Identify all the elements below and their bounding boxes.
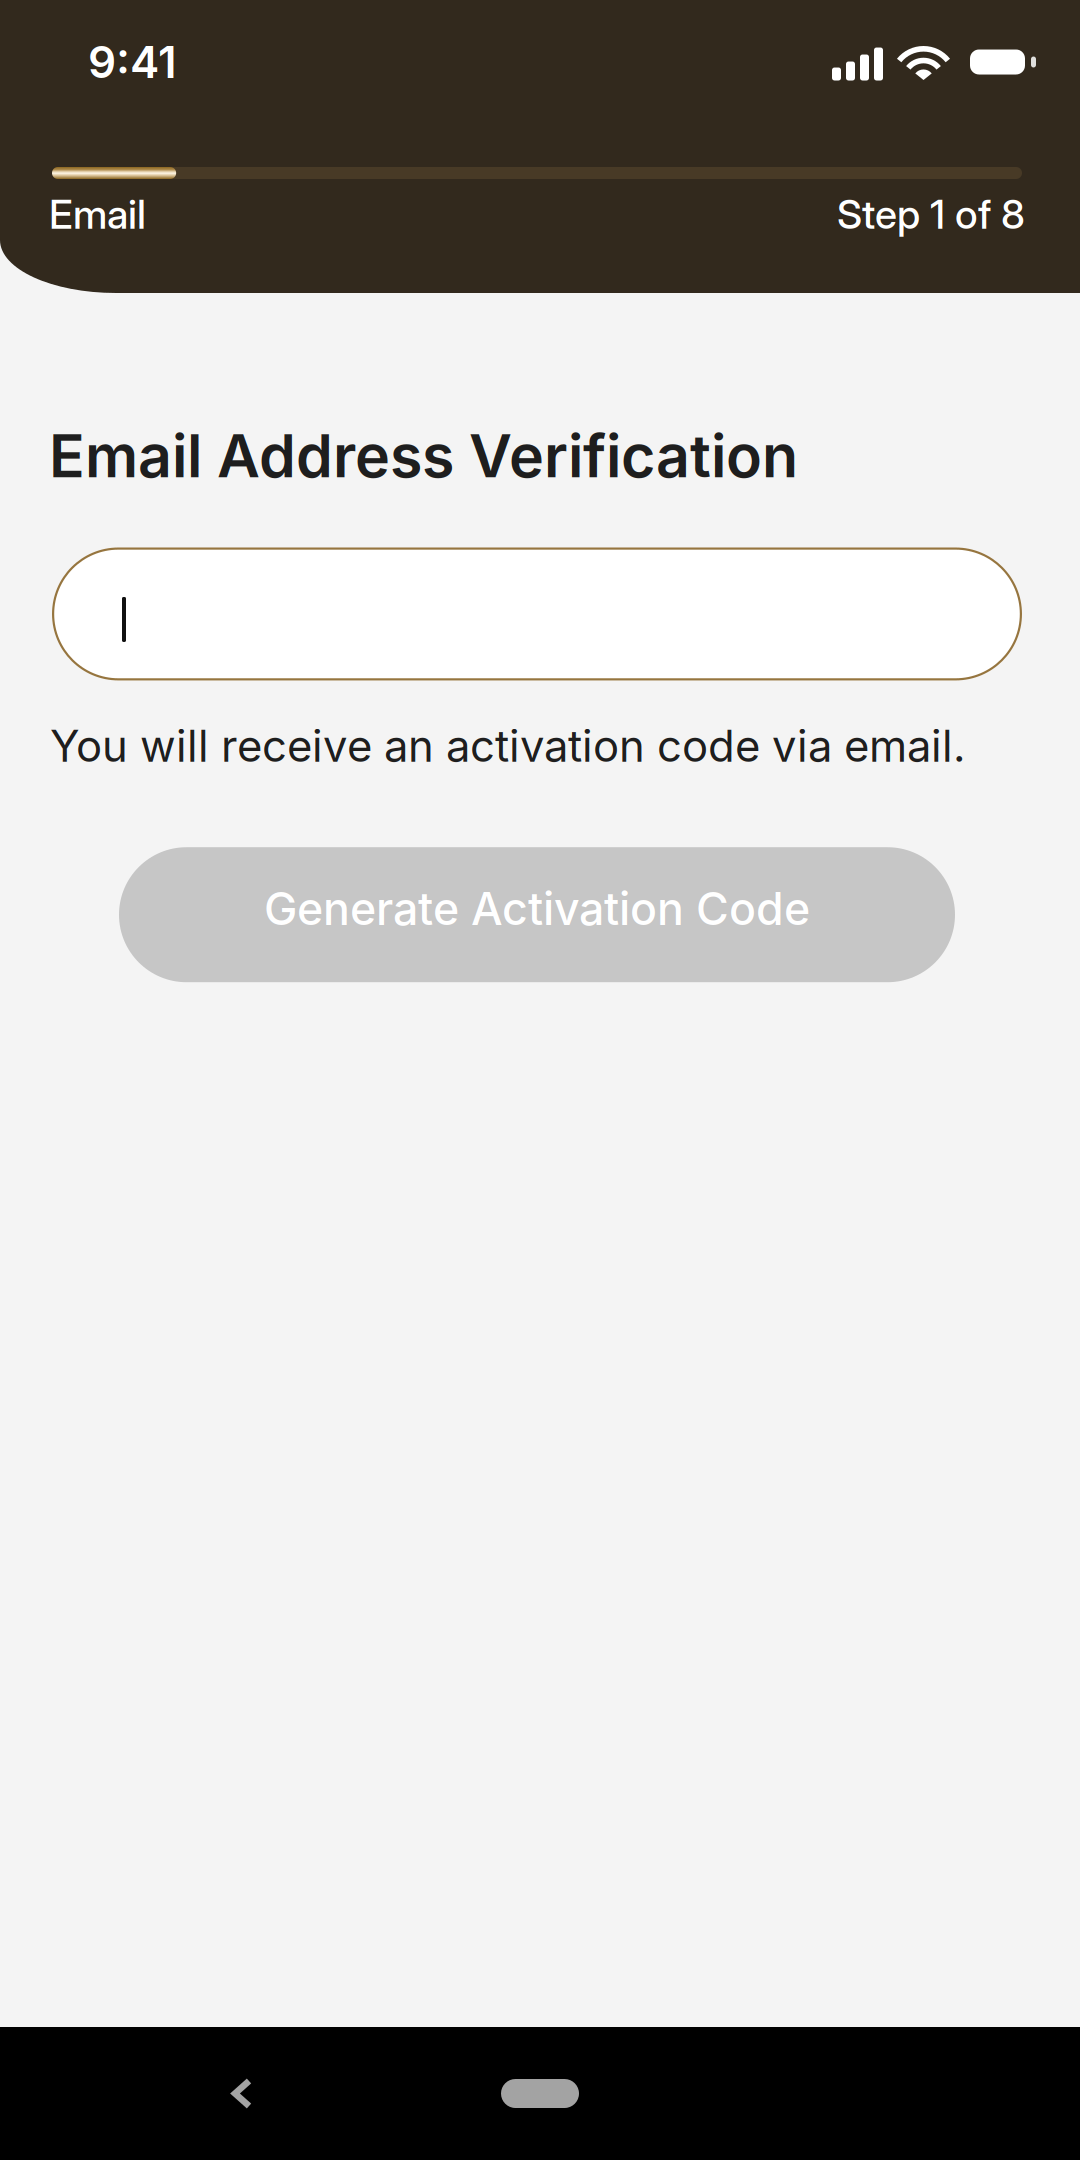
button[interactable]: Generate Activation Code — [119, 847, 955, 982]
staticText: Generate Activation Code — [264, 882, 810, 936]
staticText: Email Address Verification — [49, 420, 798, 491]
staticText: 9:41 — [88, 35, 177, 89]
staticText: Email — [49, 190, 146, 238]
button[interactable]: Back — [195, 2041, 289, 2146]
button[interactable]: Home — [475, 2053, 605, 2134]
staticText: You will receive an activation code via … — [50, 719, 966, 772]
staticText: Step 1 of 8 — [837, 190, 1025, 238]
button[interactable]: Email address — [52, 547, 1022, 680]
